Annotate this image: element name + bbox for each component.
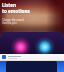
staticText: to emotions — [2, 8, 30, 14]
button[interactable] — [2, 55, 64, 59]
staticText: Listen — [2, 2, 16, 8]
staticText: Choose the mood that fits you — [2, 18, 24, 24]
